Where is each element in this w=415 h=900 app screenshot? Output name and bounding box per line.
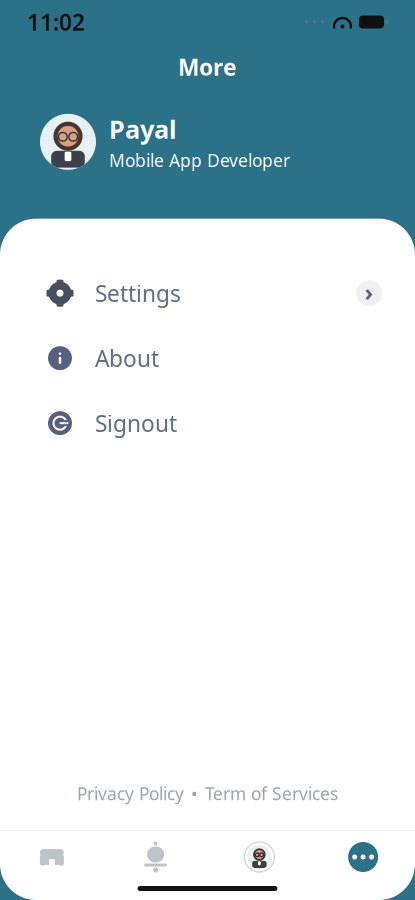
staticText: Payal — [109, 112, 177, 146]
button[interactable]: Home — [0, 831, 104, 883]
staticText: 11:02 — [27, 7, 85, 37]
button[interactable]: Profile — [207, 831, 311, 883]
staticText: Term of Services — [205, 782, 338, 805]
button[interactable]: Notifications — [104, 831, 208, 883]
button[interactable]: About — [0, 326, 415, 391]
staticText: Mobile App Developer — [109, 149, 290, 172]
staticText: Signout — [95, 408, 177, 438]
staticText: About — [95, 343, 159, 373]
button[interactable]: More — [311, 831, 415, 883]
staticText: • — [191, 782, 198, 805]
button[interactable]: Privacy Policy — [63, 777, 352, 810]
staticText: Settings — [95, 278, 181, 308]
staticText: More — [178, 52, 237, 82]
staticText: Privacy Policy — [77, 782, 184, 805]
staticText: › — [364, 276, 373, 308]
button[interactable]: Settings — [0, 261, 415, 326]
staticText: • • • — [304, 14, 325, 30]
button[interactable]: Signout — [0, 391, 415, 456]
